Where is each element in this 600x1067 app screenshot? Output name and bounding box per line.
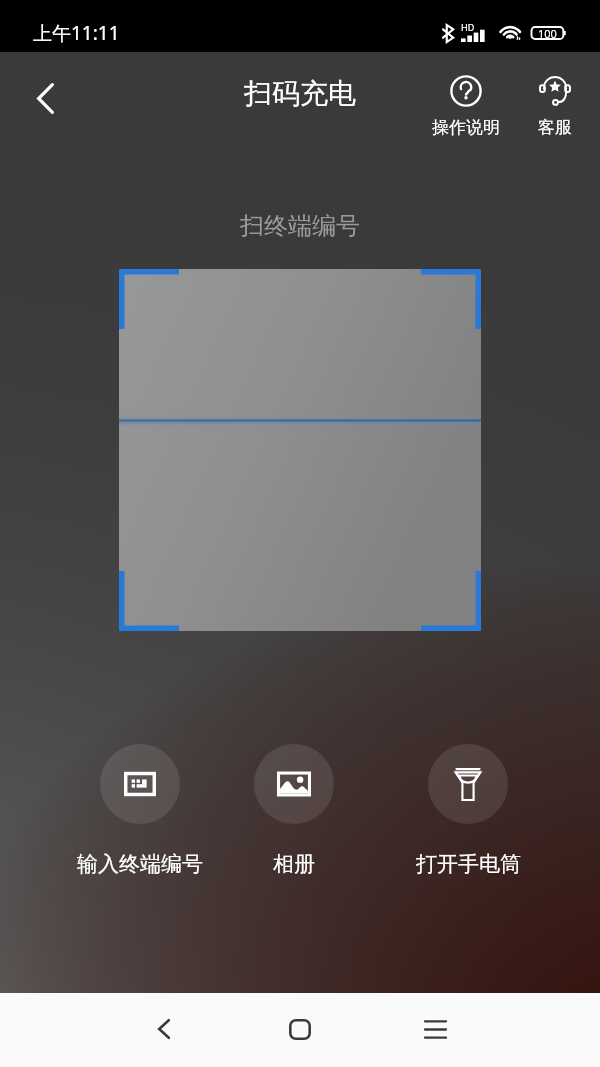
button[interactable]: 相册	[206, 744, 382, 877]
staticText: 扫终端编号	[0, 211, 600, 241]
staticText: 客服	[538, 117, 572, 138]
button[interactable]: 打开手电筒	[388, 744, 548, 877]
button[interactable]: Home	[264, 993, 336, 1065]
staticText: HD	[461, 21, 475, 33]
staticText: 上午11:11	[33, 20, 120, 46]
button[interactable]: Menu	[399, 993, 471, 1065]
button[interactable]: Back	[128, 993, 200, 1065]
staticText: 操作说明	[432, 117, 500, 138]
button[interactable]: 操作说明	[427, 74, 505, 138]
button[interactable]: 输入终端编号	[60, 744, 220, 877]
staticText: 100	[538, 26, 557, 41]
button[interactable]: 客服	[518, 74, 592, 138]
button[interactable]: Back	[16, 69, 74, 127]
staticText: 打开手电筒	[416, 851, 521, 877]
staticText: 扫码充电	[0, 76, 600, 111]
staticText: 输入终端编号	[77, 851, 203, 877]
staticText: 相册	[273, 851, 315, 877]
